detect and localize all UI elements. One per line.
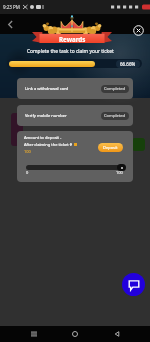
staticText: Rewards xyxy=(59,35,86,43)
button[interactable]: Back xyxy=(109,326,125,342)
button[interactable]: Close xyxy=(130,22,146,38)
staticText: 100 xyxy=(24,149,31,154)
button[interactable]: Amount slider xyxy=(117,164,126,171)
button[interactable]: Verify mobile number xyxy=(17,105,133,126)
button[interactable]: Link a withdrawal card xyxy=(17,78,133,99)
button[interactable]: Deposit xyxy=(98,143,123,152)
staticText: Verify mobile number xyxy=(25,113,67,119)
staticText: Completed xyxy=(104,113,126,119)
staticText: Deposit xyxy=(103,145,118,150)
button[interactable]: Back xyxy=(2,16,18,32)
staticText: Link a withdrawal card xyxy=(25,86,69,92)
staticText: 66.66% xyxy=(120,61,136,67)
staticText: After claiming the ticket ₱ xyxy=(24,142,73,147)
staticText: Complete the task to claim your ticket xyxy=(27,48,114,55)
staticText: 0 xyxy=(26,170,29,175)
button[interactable]: Chat support xyxy=(122,273,145,296)
staticText: Completed xyxy=(104,86,126,92)
staticText: 9:23 PM xyxy=(3,4,20,10)
button[interactable]: Home xyxy=(67,326,83,342)
button[interactable]: Completed xyxy=(101,112,129,120)
staticText: 100 xyxy=(116,170,123,175)
button[interactable]: Completed xyxy=(101,85,129,93)
staticText: Amount to deposit - xyxy=(24,135,62,140)
button[interactable]: Recents xyxy=(26,326,42,342)
